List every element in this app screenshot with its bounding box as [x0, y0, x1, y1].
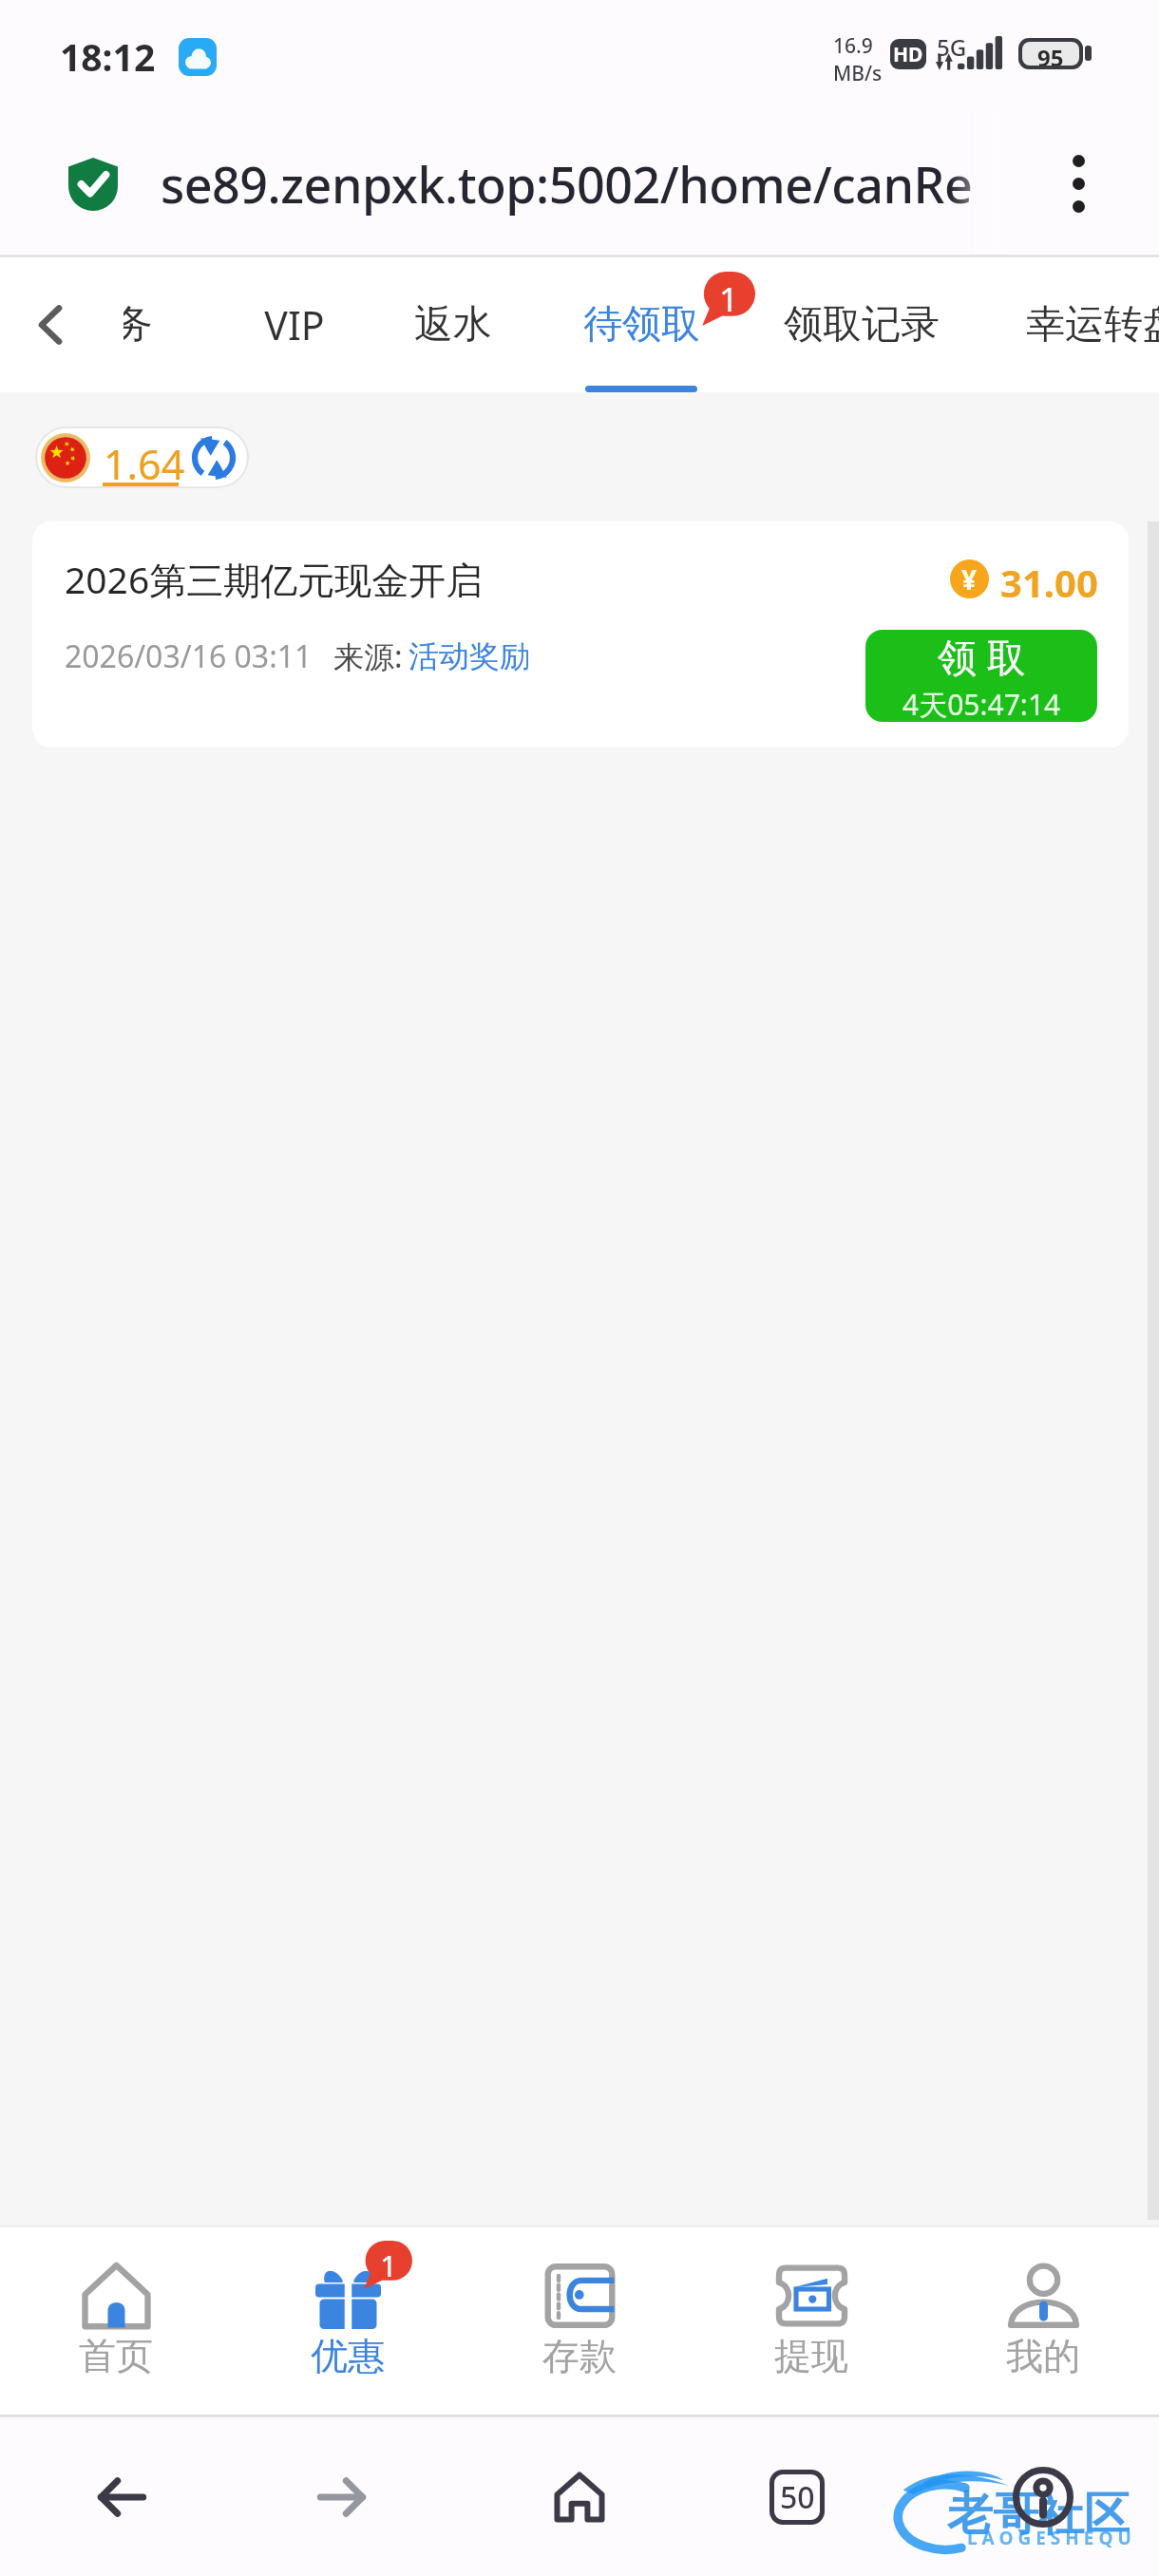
staticText: 领 取: [938, 630, 1026, 683]
staticText: 2026第三期亿元现金开启: [65, 554, 484, 604]
staticText: VIP: [264, 298, 325, 351]
staticText: 提现: [774, 2333, 848, 2379]
button[interactable]: 待领取: [537, 257, 746, 392]
staticText: 31.00: [1000, 557, 1098, 608]
button[interactable]: More options: [1065, 147, 1092, 220]
staticText: 幸运转盘: [1026, 300, 1159, 350]
staticText: 我的: [1006, 2333, 1080, 2379]
button[interactable]: 存款: [464, 2227, 695, 2415]
staticText: 返水: [414, 300, 492, 350]
button[interactable]: Tabs: [769, 2470, 825, 2525]
button[interactable]: 领取记录: [757, 257, 966, 392]
staticText: 2026/03/16 03:11: [65, 635, 313, 677]
button[interactable]: Home: [541, 2459, 617, 2535]
staticText: 优惠: [311, 2333, 385, 2379]
staticText: LAOGESHEQU: [967, 2526, 1136, 2550]
button[interactable]: 任务: [123, 257, 218, 392]
staticText: 95: [1037, 42, 1064, 66]
button[interactable]: VIP: [190, 257, 399, 392]
staticText: 老哥社区: [947, 2486, 1130, 2543]
staticText: 4天05:47:14: [902, 685, 1061, 722]
staticText: HD: [893, 41, 923, 68]
staticText: 首页: [79, 2333, 153, 2379]
staticText: 1: [380, 2245, 398, 2285]
button[interactable]: 首页: [0, 2227, 232, 2415]
staticText: 任务: [123, 300, 153, 350]
button[interactable]: Back: [84, 2459, 160, 2535]
button[interactable]: 1.64: [37, 428, 247, 486]
staticText: 待领取: [583, 300, 700, 350]
staticText: 存款: [542, 2333, 617, 2379]
button[interactable]: 2026第三期亿元现金开启: [32, 521, 1129, 748]
staticText: 来源:: [333, 635, 403, 677]
staticText: MB/s: [833, 60, 883, 87]
button[interactable]: 优惠: [232, 2227, 464, 2415]
staticText: 16.9: [833, 32, 873, 60]
button[interactable]: Profile: [1005, 2459, 1081, 2535]
button[interactable]: 幸运转盘: [999, 257, 1159, 392]
staticText: 领取记录: [784, 300, 940, 350]
button[interactable]: 领 取: [865, 630, 1097, 722]
button[interactable]: Back: [10, 285, 90, 365]
staticText: 1: [719, 275, 739, 321]
staticText: se89.zenpxk.top:5002/home/canRe: [161, 150, 973, 218]
staticText: 5G: [937, 31, 967, 63]
button[interactable]: 提现: [695, 2227, 927, 2415]
button[interactable]: 返水: [349, 257, 558, 392]
staticText: ¥: [961, 561, 978, 597]
staticText: 18:12: [60, 31, 156, 82]
staticText: 1.64: [104, 436, 185, 486]
button[interactable]: Forward: [304, 2459, 380, 2535]
staticText: 活动奖励: [408, 637, 530, 675]
staticText: 50: [780, 2476, 815, 2518]
button[interactable]: 我的: [927, 2227, 1159, 2415]
